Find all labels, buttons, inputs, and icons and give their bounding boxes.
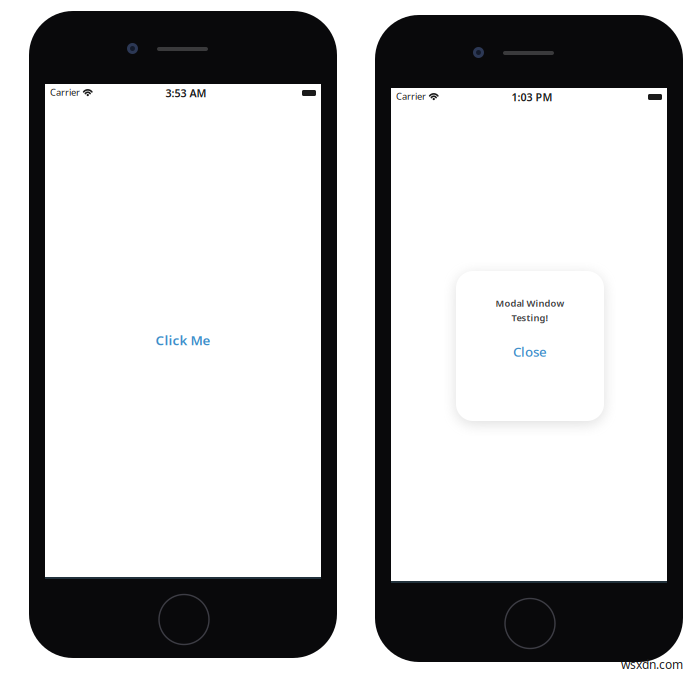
staticText: Carrier xyxy=(50,86,80,98)
staticText: Close xyxy=(513,343,547,360)
staticText: Modal Window xyxy=(495,297,564,309)
staticText: Carrier xyxy=(396,90,426,102)
staticText: Testing! xyxy=(511,311,548,324)
staticText: 1:03 PM xyxy=(511,90,552,104)
staticText: wsxdn.com xyxy=(621,656,683,672)
button[interactable]: Close xyxy=(513,343,547,360)
button[interactable]: Click Me xyxy=(155,331,210,349)
staticText: Click Me xyxy=(155,331,210,349)
staticText: 3:53 AM xyxy=(165,86,206,100)
